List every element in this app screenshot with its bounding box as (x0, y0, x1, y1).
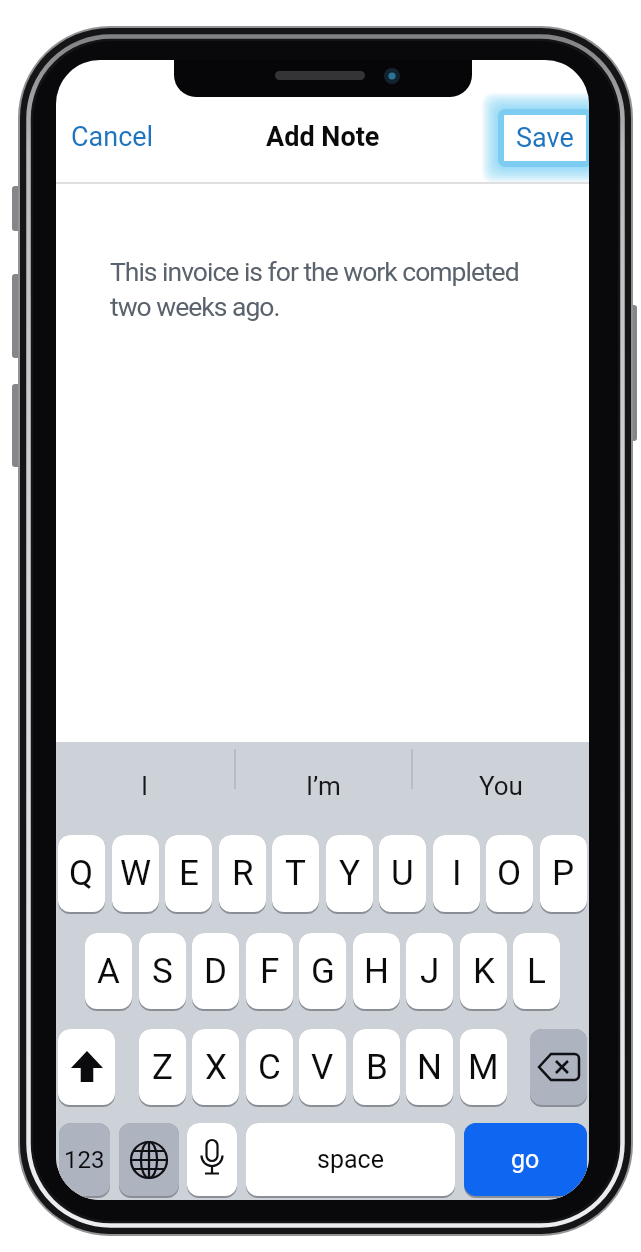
staticText: M (468, 1047, 499, 1088)
button[interactable]: R (219, 835, 266, 914)
staticText: K (473, 951, 495, 992)
staticText: go (511, 1145, 540, 1174)
staticText: F (260, 951, 280, 992)
staticText: Cancel (71, 121, 154, 153)
staticText: S (152, 951, 173, 992)
button[interactable]: A (85, 933, 132, 1011)
button[interactable]: P (540, 835, 587, 914)
button[interactable]: X (192, 1029, 239, 1107)
button[interactable] (530, 1029, 587, 1107)
staticText: Save (516, 122, 574, 154)
staticText: space (317, 1145, 384, 1174)
button[interactable]: I (433, 835, 480, 914)
button[interactable]: I (56, 742, 234, 829)
staticText: U (391, 853, 414, 894)
staticText: C (258, 1047, 281, 1088)
button[interactable]: M (460, 1029, 507, 1107)
button[interactable] (187, 1123, 237, 1198)
staticText: N (417, 1047, 442, 1088)
staticText: B (366, 1047, 388, 1088)
button[interactable]: space (246, 1123, 455, 1198)
button[interactable]: Y (326, 835, 373, 914)
staticText: J (420, 951, 440, 992)
staticText: Q (69, 853, 94, 894)
staticText: T (285, 853, 306, 894)
staticText: I’m (306, 771, 341, 801)
staticText: I (141, 771, 149, 801)
staticText: This invoice is for the work completed t… (110, 256, 519, 323)
button[interactable]: J (406, 933, 453, 1011)
staticText: I (452, 853, 462, 894)
button[interactable]: I’m (234, 742, 412, 829)
button[interactable]: Z (139, 1029, 186, 1107)
button[interactable] (58, 1029, 115, 1107)
button[interactable]: Q (58, 835, 105, 914)
button[interactable]: E (165, 835, 212, 914)
staticText: You (479, 771, 523, 801)
staticText: D (204, 951, 227, 992)
staticText: V (311, 1047, 334, 1088)
button[interactable]: T (272, 835, 319, 914)
button[interactable]: Save (504, 115, 586, 161)
staticText: A (97, 951, 120, 992)
button[interactable]: W (112, 835, 159, 914)
button[interactable]: You (412, 742, 589, 829)
button[interactable]: F (246, 933, 293, 1011)
staticText: R (232, 853, 254, 894)
button[interactable]: H (353, 933, 400, 1011)
button[interactable]: N (406, 1029, 453, 1107)
staticText: L (527, 951, 546, 992)
button[interactable]: K (460, 933, 507, 1011)
staticText: O (497, 853, 522, 894)
button[interactable]: L (513, 933, 560, 1011)
staticText: H (364, 951, 389, 992)
button[interactable]: U (379, 835, 426, 914)
button[interactable]: S (139, 933, 186, 1011)
staticText: E (179, 853, 199, 894)
button[interactable]: D (192, 933, 239, 1011)
button[interactable]: go (464, 1123, 587, 1198)
staticText: G (311, 951, 335, 992)
staticText: Add Note (266, 121, 380, 153)
staticText: X (205, 1047, 227, 1088)
button[interactable]: G (299, 933, 346, 1011)
staticText: 123 (64, 1146, 105, 1174)
button[interactable]: B (353, 1029, 400, 1107)
staticText: Z (152, 1047, 173, 1088)
button[interactable]: C (246, 1029, 293, 1107)
staticText: P (552, 853, 575, 894)
button[interactable]: V (299, 1029, 346, 1107)
button[interactable]: O (486, 835, 533, 914)
staticText: Y (339, 853, 361, 894)
button[interactable]: 123 (59, 1123, 110, 1198)
button[interactable] (119, 1123, 179, 1198)
button[interactable]: Cancel (71, 115, 181, 159)
staticText: W (120, 853, 152, 894)
